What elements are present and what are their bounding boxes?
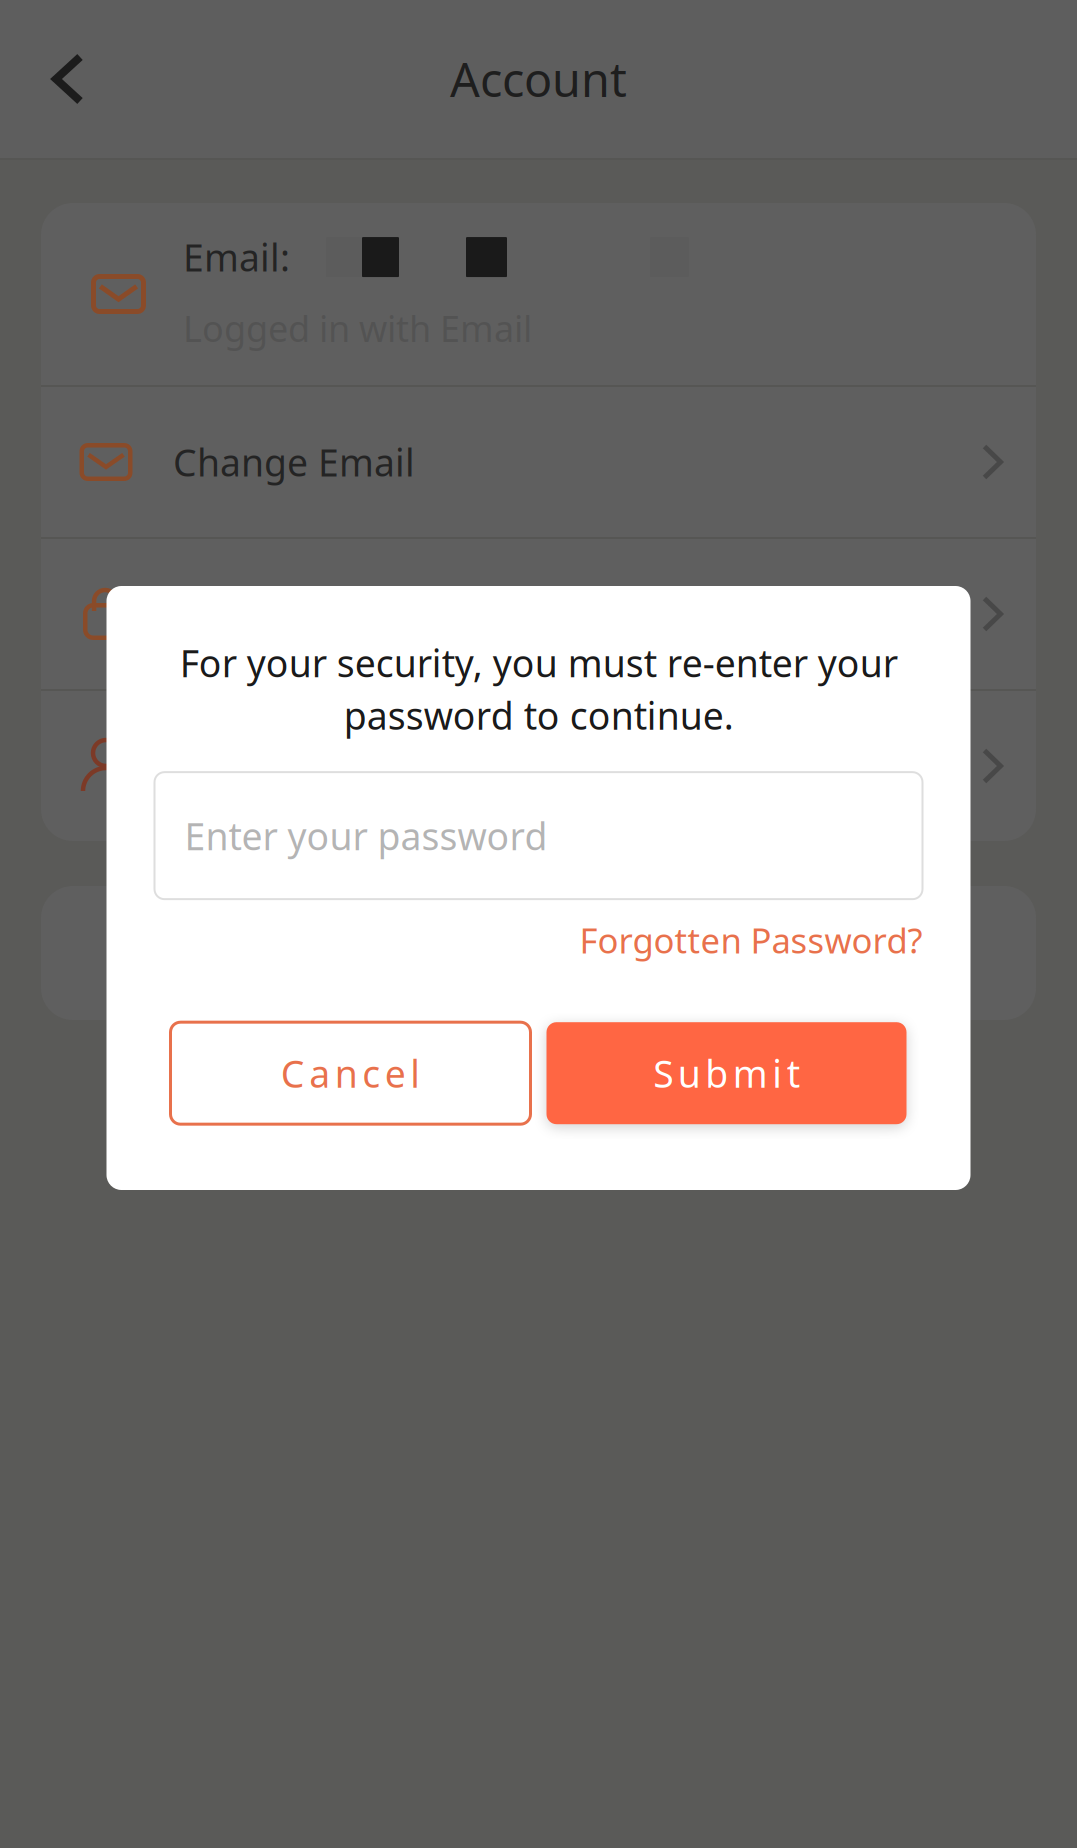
staticText: Change Email <box>173 437 415 487</box>
button[interactable]: Submit <box>546 1022 906 1124</box>
button[interactable]: Change Email <box>41 387 1036 537</box>
button[interactable]: Enter your password <box>154 772 922 899</box>
button[interactable]: Cancel <box>170 1022 530 1124</box>
staticText: Forgotten Password? <box>579 917 922 963</box>
button[interactable]: Delete Account <box>41 691 1036 841</box>
staticText: Submit <box>653 1048 800 1098</box>
button[interactable]: Change Password <box>41 539 1036 689</box>
staticText: Account <box>450 48 627 110</box>
staticText: Delete Account <box>173 741 438 791</box>
button[interactable]: Back <box>0 0 114 158</box>
staticText: For your security, you must re-enter you… <box>179 638 897 740</box>
staticText: Enter your password <box>184 811 547 860</box>
staticText: Logged in with Email <box>183 304 532 352</box>
button[interactable]: Forgotten Password? <box>579 917 922 963</box>
staticText: Cancel <box>281 1048 420 1098</box>
staticText: Email: <box>183 232 290 282</box>
